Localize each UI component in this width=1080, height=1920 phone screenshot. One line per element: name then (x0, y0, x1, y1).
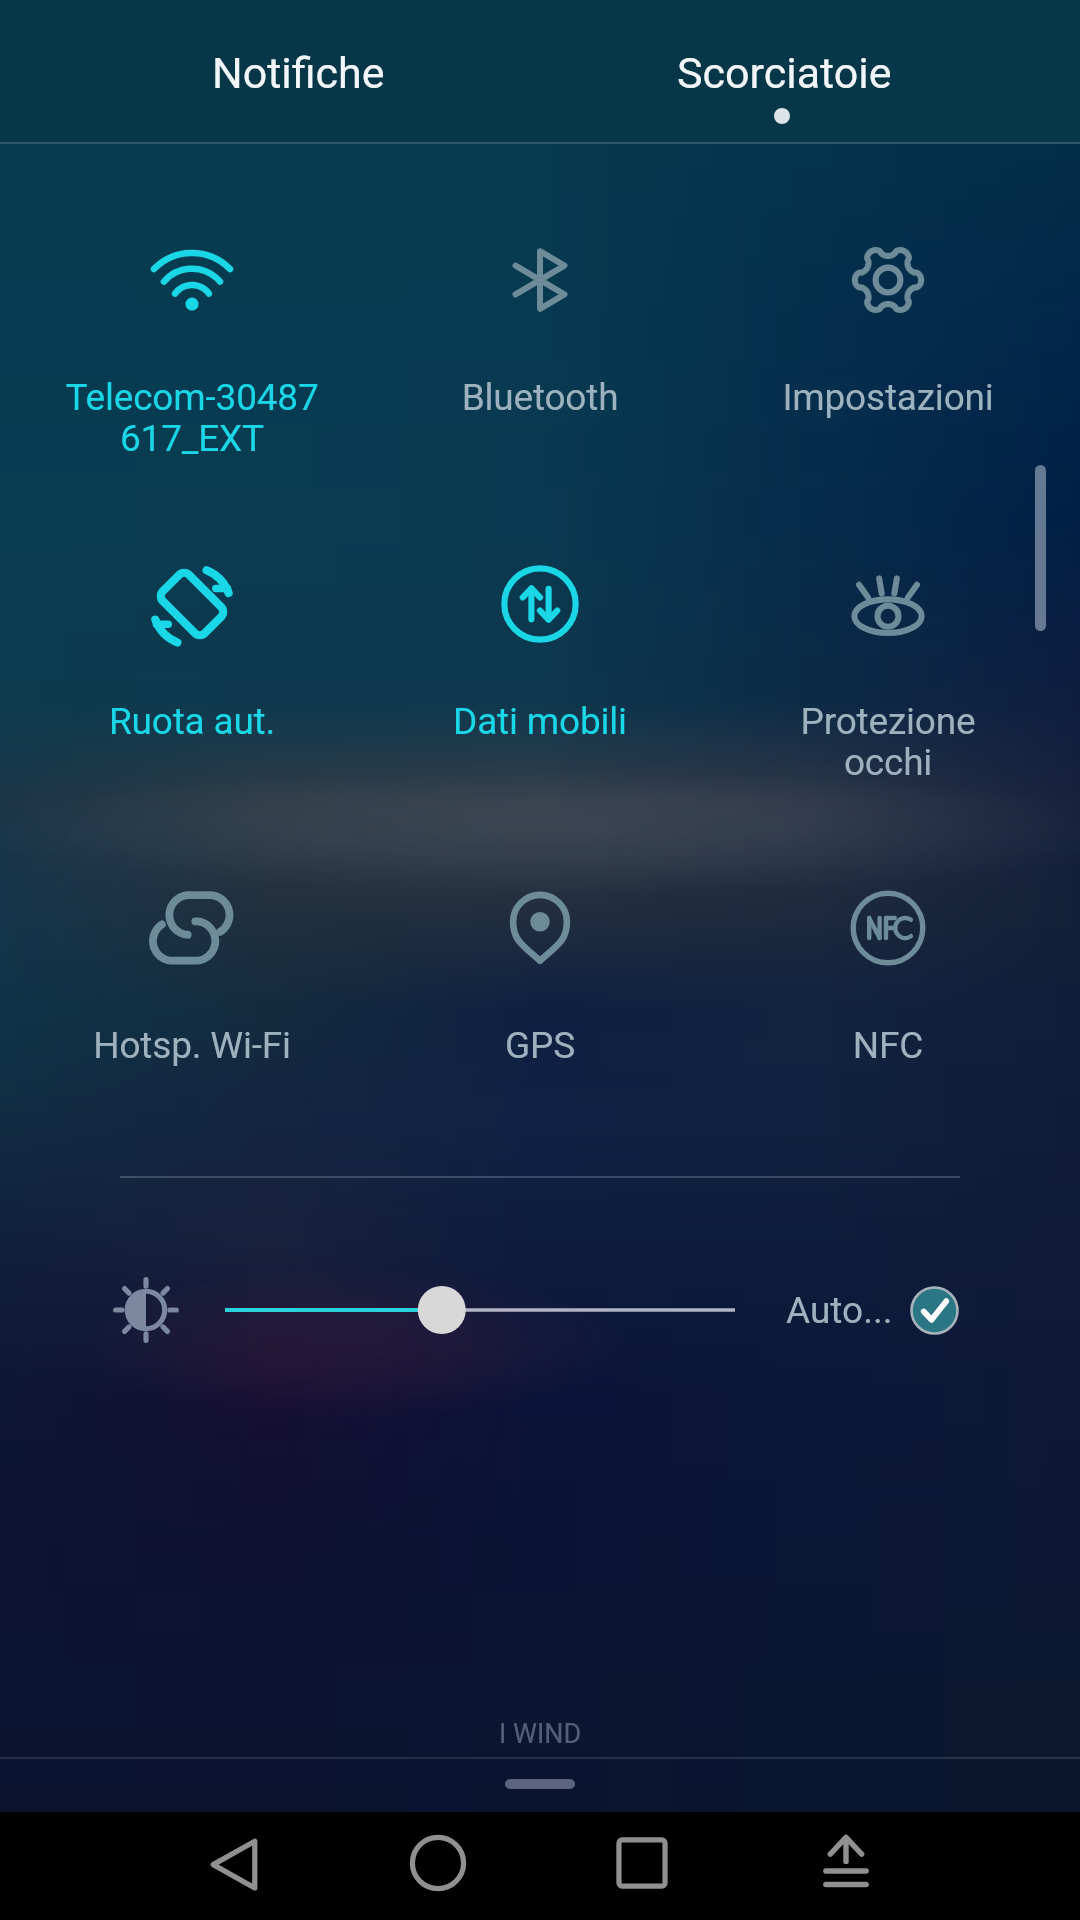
staticText: Hotsp. Wi-Fi (18, 1024, 366, 1067)
staticText: Bluetooth (366, 376, 714, 419)
staticText: I WIND (499, 1718, 582, 1750)
staticText: Protezione occhi (714, 700, 1062, 784)
button[interactable]: GPS (366, 858, 714, 1108)
button[interactable]: Hotsp. Wi-Fi (18, 858, 366, 1108)
button[interactable]: Scorciatoie (541, 0, 1080, 144)
button[interactable]: Back (183, 1812, 285, 1914)
staticText: Auto... (786, 1289, 893, 1332)
staticText: Notifiche (212, 48, 385, 98)
staticText: GPS (366, 1024, 714, 1067)
staticText: Dati mobili (366, 700, 714, 743)
button[interactable]: Dati mobili (366, 534, 714, 784)
button[interactable]: Notifiche (0, 0, 541, 144)
button[interactable]: Ruota aut. (18, 534, 366, 784)
button[interactable]: Hide navigation bar (795, 1812, 897, 1914)
staticText: Impostazioni (714, 376, 1062, 419)
button[interactable]: Auto... (786, 1284, 959, 1336)
staticText: NFC (714, 1024, 1062, 1067)
staticText: Scorciatoie (677, 48, 892, 98)
button[interactable]: Protezione occhi (714, 534, 1062, 784)
staticText: Ruota aut. (18, 700, 366, 743)
button[interactable]: Telecom-30487 617_EXT (18, 210, 366, 460)
button[interactable]: Bluetooth (366, 210, 714, 460)
button[interactable]: Brightness (110, 1274, 182, 1346)
button[interactable]: Impostazioni (714, 210, 1062, 460)
button[interactable]: Recent apps (591, 1812, 693, 1914)
button[interactable]: NFC (714, 858, 1062, 1108)
button[interactable]: Brightness slider (215, 1280, 745, 1340)
staticText: Telecom-30487 617_EXT (18, 376, 366, 460)
button[interactable]: Home (387, 1812, 489, 1914)
